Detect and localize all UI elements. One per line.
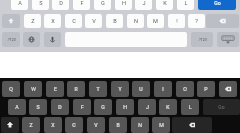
staticText: K (163, 0, 167, 7)
staticText: D (59, 0, 63, 7)
button[interactable]: I (154, 81, 172, 97)
button[interactable]: F (73, 0, 90, 10)
button[interactable]: Go (203, 99, 240, 115)
button[interactable]: J (138, 99, 156, 115)
button[interactable]: T (89, 81, 107, 97)
staticText: ? (195, 18, 198, 25)
button[interactable]: .?123 (191, 32, 213, 47)
staticText: K (166, 104, 170, 110)
button[interactable]: D (52, 0, 69, 10)
staticText: C (72, 122, 76, 128)
staticText: E (54, 86, 57, 92)
staticText: F (80, 0, 84, 7)
button[interactable]: Backspace (219, 81, 237, 97)
button[interactable]: V (87, 117, 105, 133)
button[interactable]: Y (111, 81, 129, 97)
button[interactable]: B (106, 14, 123, 28)
staticText: C (72, 18, 76, 25)
button[interactable]: ! (168, 14, 185, 28)
button[interactable]: L (181, 99, 199, 115)
staticText: O (183, 86, 187, 92)
staticText: I (162, 86, 164, 92)
button[interactable]: K (156, 0, 173, 10)
staticText: V (92, 18, 96, 25)
button[interactable]: X (44, 117, 62, 133)
button[interactable]: V (85, 14, 102, 28)
staticText: J (142, 0, 146, 7)
staticText: Q (9, 86, 13, 92)
staticText: L (184, 0, 188, 7)
button[interactable]: N (131, 117, 149, 133)
button[interactable]: J (135, 0, 152, 10)
button[interactable]: A (11, 0, 28, 10)
button[interactable]: Go (198, 0, 236, 10)
button[interactable]: X (44, 14, 61, 28)
button[interactable]: C (65, 14, 82, 28)
staticText: M (153, 18, 158, 25)
button[interactable]: K (159, 99, 177, 115)
button[interactable]: O (176, 81, 194, 97)
button[interactable]: W (24, 81, 42, 97)
staticText: G (101, 104, 105, 110)
button[interactable]: F (73, 99, 91, 115)
button[interactable]: Backspace (206, 14, 239, 28)
button[interactable]: S (29, 99, 47, 115)
staticText: G (101, 0, 105, 7)
staticText: S (39, 0, 43, 7)
button[interactable]: H (116, 99, 134, 115)
button[interactable]: M (147, 14, 164, 28)
staticText: P (204, 86, 208, 92)
button[interactable]: P (197, 81, 215, 97)
staticText: X (51, 122, 55, 128)
staticText: N (138, 122, 142, 128)
button[interactable]: S (32, 0, 49, 10)
button[interactable]: L (177, 0, 194, 10)
staticText: W (31, 86, 36, 92)
staticText: R (74, 86, 78, 92)
staticText: Go (214, 0, 221, 6)
button[interactable]: A (8, 99, 26, 115)
button[interactable]: H (115, 0, 132, 10)
button[interactable]: Hide keyboard (217, 32, 239, 47)
button[interactable]: R (67, 81, 85, 97)
staticText: Y (118, 86, 122, 92)
button[interactable]: Change language (23, 32, 40, 47)
button[interactable]: M (152, 117, 170, 133)
staticText: .?123 (7, 38, 16, 42)
staticText: N (134, 18, 138, 25)
button[interactable]: U (132, 81, 150, 97)
button[interactable]: E (46, 81, 64, 97)
staticText: T (96, 86, 100, 92)
staticText: Z (31, 18, 35, 25)
button[interactable]: N (127, 14, 144, 28)
button[interactable]: Shift (2, 14, 20, 28)
button[interactable]: B (109, 117, 127, 133)
button[interactable]: D (51, 99, 69, 115)
button[interactable]: G (94, 0, 111, 10)
staticText: A (15, 104, 19, 110)
staticText: ! (176, 18, 178, 25)
staticText: Go (218, 104, 225, 110)
staticText: .?123 (198, 38, 207, 42)
button[interactable]: .?123 (2, 32, 20, 47)
staticText: H (122, 0, 126, 7)
button[interactable]: Voice input (44, 32, 61, 47)
button[interactable]: Z (24, 14, 41, 28)
button[interactable]: ? (188, 14, 205, 28)
button[interactable]: Backspace (172, 117, 212, 133)
button[interactable]: C (65, 117, 83, 133)
staticText: F (81, 104, 84, 110)
button[interactable]: G (94, 99, 112, 115)
button[interactable]: Z (22, 117, 40, 133)
staticText: U (139, 86, 143, 92)
staticText: D (58, 104, 62, 110)
staticText: M (159, 122, 164, 128)
staticText: S (36, 104, 40, 110)
staticText: V (94, 122, 98, 128)
button[interactable]: Shift (1, 117, 19, 133)
staticText: B (116, 122, 120, 128)
button[interactable]: Q (2, 81, 20, 97)
staticText: H (123, 104, 127, 110)
staticText: B (113, 18, 117, 25)
